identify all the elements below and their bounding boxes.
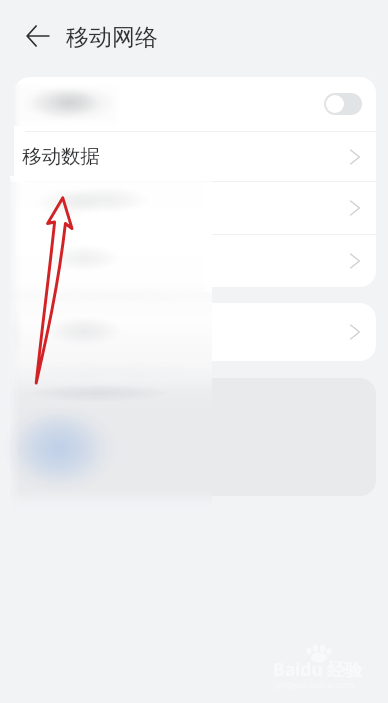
button[interactable]: Toggle	[14, 77, 376, 131]
button[interactable]: Setting	[14, 303, 376, 361]
staticText: 移动数据	[22, 144, 100, 169]
button[interactable]: Setting	[14, 182, 376, 234]
staticText: Baidu 经验	[273, 657, 363, 681]
button[interactable]: 移动数据	[14, 132, 376, 181]
staticText: 移动网络	[66, 23, 158, 52]
button[interactable]: Back	[20, 18, 56, 54]
button[interactable]: Setting	[14, 235, 376, 287]
